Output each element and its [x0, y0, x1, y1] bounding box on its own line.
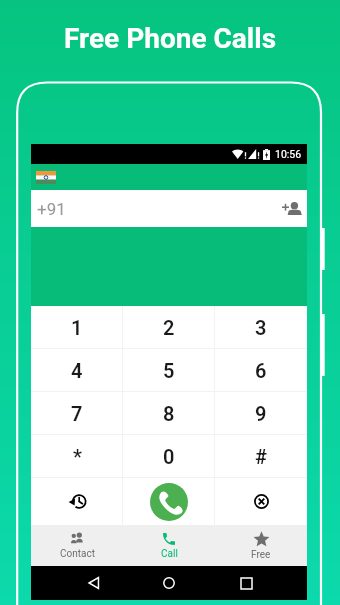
staticText: 10:56	[275, 148, 302, 160]
staticText: 4	[71, 359, 83, 382]
button[interactable]: +91	[31, 190, 307, 227]
staticText: 9	[255, 402, 267, 425]
staticText: 0	[163, 445, 175, 468]
button[interactable]: 8	[123, 392, 215, 435]
button[interactable]: Add contact	[282, 202, 302, 215]
staticText: 5	[163, 359, 175, 382]
staticText: 1	[71, 316, 83, 339]
button[interactable]: Back	[78, 568, 108, 598]
staticText: 2	[163, 316, 175, 339]
button[interactable]: 5	[123, 349, 215, 392]
button[interactable]: #	[215, 435, 307, 478]
staticText: Call	[161, 548, 178, 560]
staticText: 8	[163, 402, 175, 425]
button[interactable]: Contact	[31, 525, 123, 566]
staticText: 3	[255, 316, 267, 339]
button[interactable]: 2	[123, 306, 215, 349]
button[interactable]: 9	[215, 392, 307, 435]
button[interactable]: Call	[123, 478, 215, 525]
button[interactable]: 1	[31, 306, 123, 349]
staticText: 7	[71, 402, 83, 425]
button[interactable]: Call history	[31, 478, 123, 525]
button[interactable]: Home	[154, 568, 184, 598]
button[interactable]: 7	[31, 392, 123, 435]
button[interactable]: 6	[215, 349, 307, 392]
button[interactable]: Recents	[231, 568, 261, 598]
button[interactable]: 4	[31, 349, 123, 392]
button[interactable]: 0	[123, 435, 215, 478]
staticText: Contact	[60, 548, 95, 560]
button[interactable]: 3	[215, 306, 307, 349]
staticText: *	[73, 445, 82, 468]
staticText: 6	[255, 359, 267, 382]
button[interactable]: Select country	[36, 171, 56, 184]
button[interactable]: *	[31, 435, 123, 478]
button[interactable]: Delete	[215, 478, 307, 525]
staticText: Free Phone Calls	[0, 22, 340, 55]
button[interactable]: Call	[123, 525, 215, 566]
staticText: Free	[251, 549, 271, 561]
staticText: #	[255, 445, 267, 468]
staticText: +91	[37, 199, 66, 219]
button[interactable]: Free	[215, 525, 307, 566]
